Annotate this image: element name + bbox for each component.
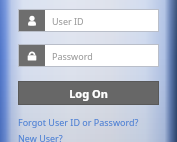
staticText: Forgot User ID or Password? [18, 116, 139, 128]
button[interactable]: Password [18, 44, 159, 67]
button[interactable]: Forgot User ID or Password? [18, 116, 159, 128]
staticText: User ID [52, 15, 84, 27]
button[interactable]: User ID [18, 9, 159, 32]
button[interactable]: New User? [18, 132, 159, 142]
button[interactable]: Log On [18, 81, 159, 105]
other: Password [18, 44, 45, 67]
staticText: Password [52, 50, 93, 62]
staticText: New User? [18, 132, 63, 142]
staticText: Log On [69, 86, 108, 101]
other: User ID [18, 9, 45, 32]
